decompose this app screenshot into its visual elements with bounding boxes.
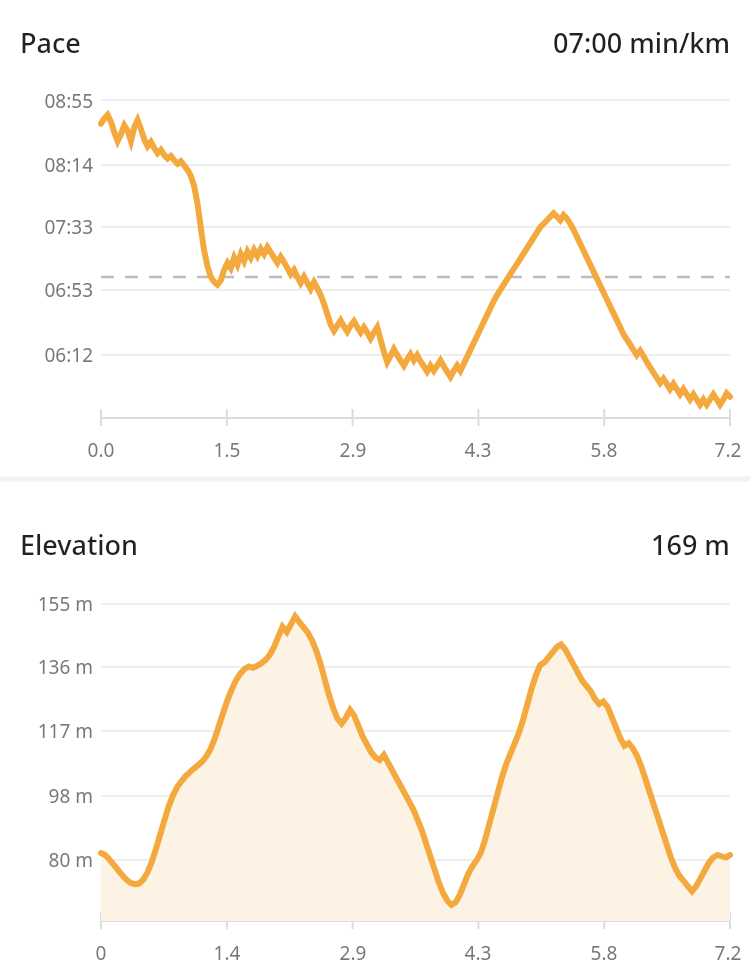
staticText: 7.2 [688, 940, 750, 966]
staticText: Elevation [20, 526, 139, 563]
staticText: 136 m [13, 654, 93, 680]
staticText: 117 m [13, 718, 93, 744]
staticText: 0.0 [61, 437, 141, 463]
staticText: 06:53 [13, 277, 93, 303]
staticText: 0 [61, 940, 141, 966]
button[interactable]: Elevation [0, 526, 750, 563]
staticText: 07:33 [13, 214, 93, 240]
staticText: 169 m [651, 526, 730, 563]
staticText: 08:14 [13, 152, 93, 178]
staticText: 5.8 [564, 437, 644, 463]
staticText: 2.9 [313, 437, 393, 463]
staticText: 155 m [13, 591, 93, 617]
staticText: 08:55 [13, 88, 93, 114]
staticText: 80 m [13, 847, 93, 873]
staticText: 4.3 [438, 437, 518, 463]
staticText: 5.8 [564, 940, 644, 966]
staticText: 98 m [13, 783, 93, 809]
staticText: 1.5 [187, 437, 267, 463]
button[interactable]: Pace [0, 24, 750, 61]
staticText: 7.2 [688, 437, 750, 463]
staticText: 07:00 min/km [553, 24, 730, 61]
staticText: 4.3 [438, 940, 518, 966]
staticText: 06:12 [13, 342, 93, 368]
staticText: Pace [20, 24, 81, 61]
staticText: 2.9 [313, 940, 393, 966]
staticText: 1.4 [187, 940, 267, 966]
